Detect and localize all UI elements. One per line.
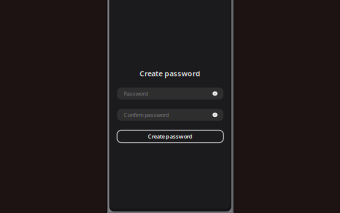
button[interactable]: Password [117,88,223,99]
button[interactable]: Create password [117,130,223,143]
button[interactable]: Confirm password [117,109,223,121]
staticText: Password [123,90,147,97]
staticText: Confirm password [123,111,168,119]
staticText: Create password [148,133,193,140]
staticText: Create password [139,68,200,78]
